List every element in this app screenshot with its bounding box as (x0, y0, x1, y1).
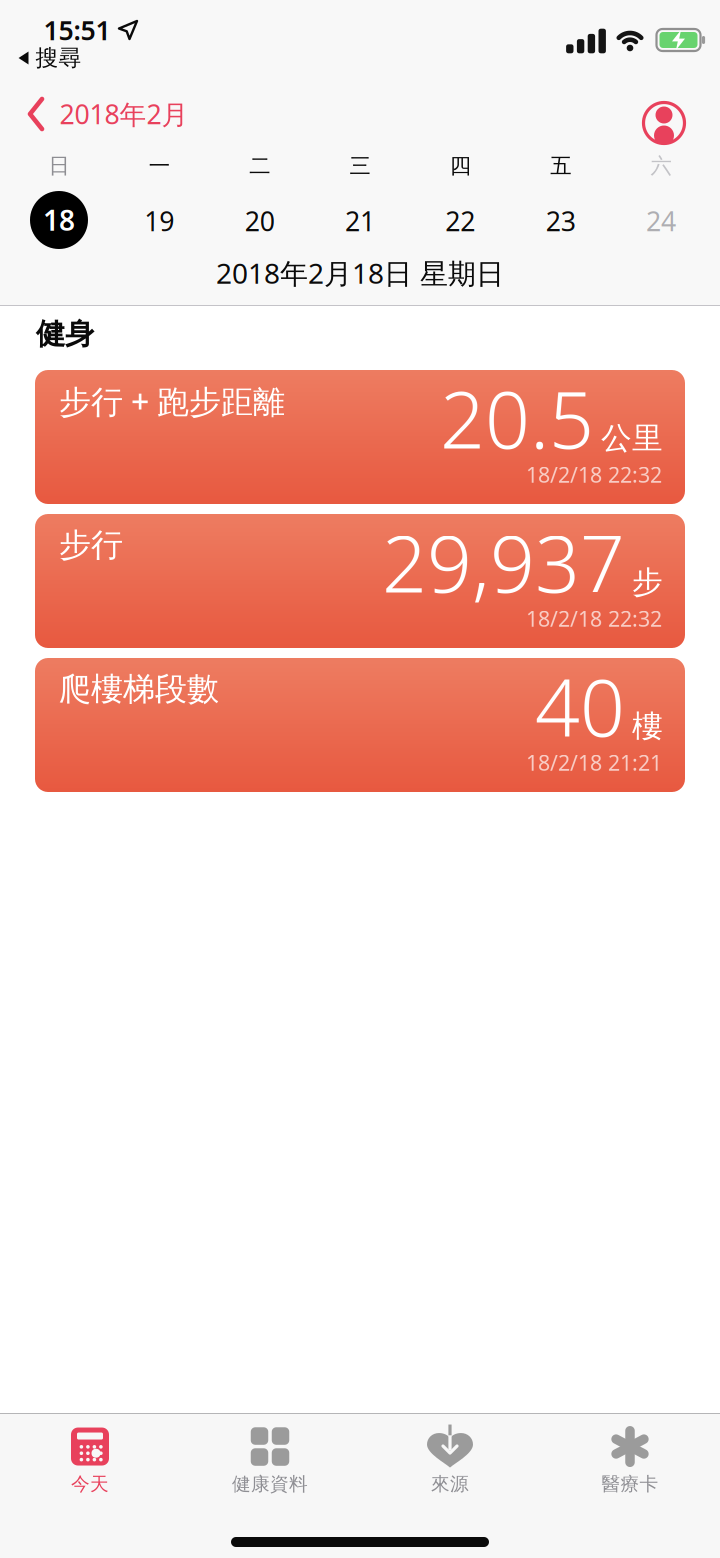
staticText: 2018年2月18日 星期日 (216, 254, 504, 292)
button[interactable]: 步行 (35, 514, 685, 648)
staticText: 18/2/18 22:32 (526, 460, 662, 489)
button[interactable] (643, 102, 684, 143)
staticText: 步 (632, 563, 663, 601)
button[interactable]: 健康資料 (180, 1426, 360, 1495)
button[interactable]: 20 (245, 203, 275, 239)
staticText: 健康資料 (232, 1472, 308, 1495)
button[interactable]: 來源 (360, 1426, 540, 1495)
staticText: 搜尋 (35, 44, 81, 72)
staticText: 樓 (632, 707, 663, 745)
staticText: 20.5 (440, 366, 594, 470)
staticText: 21 (345, 203, 375, 239)
staticText: 29,937 (382, 510, 625, 614)
button[interactable]: 24 (646, 203, 676, 239)
button[interactable]: 爬樓梯段數 (35, 658, 685, 792)
staticText: 五 (550, 153, 571, 179)
staticText: 三 (349, 153, 370, 179)
button[interactable]: 2018年2月 (27, 96, 188, 132)
button[interactable]: 19 (144, 203, 174, 239)
button[interactable]: 步行 + 跑步距離 (35, 370, 685, 504)
button[interactable]: 今天 (0, 1426, 180, 1495)
staticText: 一 (149, 153, 170, 179)
staticText: 18/2/18 22:32 (526, 604, 662, 633)
button[interactable]: 搜尋 (18, 44, 81, 72)
staticText: 醫療卡 (601, 1472, 658, 1495)
staticText: 2018年2月 (59, 96, 188, 132)
staticText: 來源 (431, 1472, 469, 1495)
staticText: 六 (650, 153, 671, 179)
staticText: 15:51 (43, 12, 110, 48)
staticText: 日 (48, 153, 69, 179)
staticText: 四 (450, 153, 471, 179)
staticText: 23 (546, 203, 576, 239)
staticText: 18/2/18 21:21 (526, 748, 662, 777)
staticText: 公里 (601, 419, 663, 457)
staticText: 20 (245, 203, 275, 239)
staticText: 24 (646, 203, 676, 239)
button[interactable]: 22 (445, 203, 475, 239)
button[interactable]: 23 (546, 203, 576, 239)
staticText: 二 (249, 153, 270, 179)
staticText: 今天 (71, 1472, 109, 1495)
staticText: 步行 (59, 525, 123, 565)
button[interactable]: 21 (345, 203, 375, 239)
staticText: 18 (43, 201, 75, 239)
button[interactable]: 醫療卡 (540, 1426, 720, 1495)
staticText: 健身 (36, 316, 94, 352)
button[interactable]: 18 (30, 191, 88, 249)
staticText: 19 (144, 203, 174, 239)
staticText: 爬樓梯段數 (59, 669, 219, 709)
staticText: 40 (535, 654, 625, 758)
staticText: 22 (445, 203, 475, 239)
staticText: 步行 + 跑步距離 (59, 380, 285, 422)
